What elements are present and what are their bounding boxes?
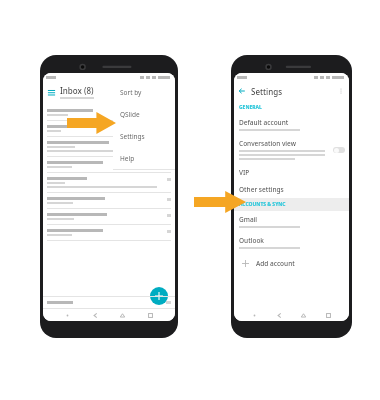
staticText: Inbox (8) [60,85,94,96]
button[interactable]: Default account [234,114,349,135]
other: Back [276,312,283,319]
staticText: Gmail [239,215,258,224]
other: Recents [325,312,332,319]
staticText: Settings [251,86,283,97]
staticText: ACCOUNTS & SYNC [239,201,286,208]
button[interactable]: Add account [242,253,349,273]
button[interactable]: Outlook [234,232,349,253]
button[interactable]: More options [337,87,345,95]
button[interactable]: Help [113,147,175,169]
button[interactable]: Other settings [234,181,349,198]
other: Home [119,312,126,319]
staticText: Sort by [120,88,142,97]
button[interactable]: Next step [194,191,246,213]
staticText: Other settings [239,185,284,194]
button[interactable]: Conversation view [234,135,349,164]
staticText: Default account [239,118,289,127]
other: More [64,312,71,319]
staticText: Settings [120,132,145,141]
staticText: Outlook [239,236,264,245]
button[interactable]: Conversation view toggle [333,147,345,153]
button[interactable]: Gmail [234,211,349,232]
other: Back [92,312,99,319]
staticText: GENERAL [239,104,262,111]
staticText: Help [120,154,135,163]
other: Recents [147,312,154,319]
button[interactable]: VIP [234,164,349,181]
button[interactable]: QSlide [113,103,175,125]
button[interactable]: Compose [150,287,168,305]
staticText: Add account [256,259,295,268]
staticText: VIP [239,168,250,177]
staticText: QSlide [120,110,140,119]
button[interactable]: Sort by [113,81,175,103]
staticText: Conversation view [239,139,296,148]
button[interactable]: Settings [113,125,175,147]
button[interactable]: Back [238,87,246,95]
other: More [251,312,258,319]
other: Home [300,312,307,319]
button[interactable]: Tap Settings [67,112,116,134]
button[interactable]: Open navigation menu [47,88,56,97]
